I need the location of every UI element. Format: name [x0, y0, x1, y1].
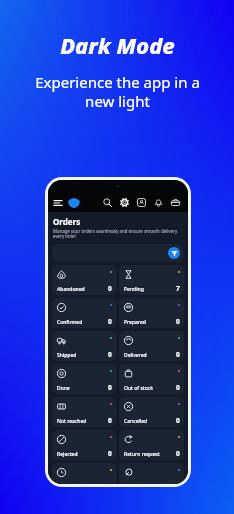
button[interactable]: Delivered: [119, 331, 184, 361]
staticText: 0: [176, 482, 180, 484]
staticText: 0: [108, 284, 112, 293]
staticText: 0: [176, 416, 180, 425]
staticText: Abandoned: [57, 286, 85, 293]
staticText: 0: [108, 449, 112, 458]
button[interactable]: Rejected: [52, 430, 116, 460]
button[interactable]: Not reached: [52, 397, 116, 427]
button[interactable]: Return request: [119, 430, 184, 460]
button[interactable]: [53, 244, 183, 262]
button[interactable]: Done: [52, 364, 116, 394]
staticText: Out of stock: [124, 385, 154, 392]
staticText: Not reached: [57, 418, 87, 425]
staticText: Pending: [124, 286, 144, 293]
staticText: 7: [176, 284, 180, 293]
button[interactable]: Partial: [52, 463, 116, 484]
staticText: Orders: [53, 216, 81, 227]
button[interactable]: Cancelled: [119, 397, 184, 427]
staticText: 0: [176, 449, 180, 458]
button[interactable]: Confirmed: [52, 298, 116, 328]
staticText: 0: [108, 383, 112, 392]
staticText: 0: [176, 383, 180, 392]
button[interactable]: Settings: [116, 194, 133, 211]
staticText: Rejected: [57, 451, 78, 458]
button[interactable]: Search: [99, 194, 116, 211]
button[interactable]: Filter: [168, 247, 180, 259]
staticText: 0: [176, 350, 180, 359]
button[interactable]: Prepared: [119, 298, 184, 328]
staticText: Return request: [124, 451, 160, 458]
staticText: 0: [108, 317, 112, 326]
staticText: Manage your orders seamlessly and ensure…: [53, 228, 178, 240]
staticText: Dark Mode: [60, 30, 175, 60]
button[interactable]: Refunded: [119, 463, 184, 484]
staticText: Cancelled: [124, 418, 148, 425]
staticText: 0: [108, 350, 112, 359]
button[interactable]: Notifications: [150, 194, 167, 211]
staticText: Done: [57, 385, 70, 392]
staticText: 0: [176, 317, 180, 326]
button[interactable]: Shipped: [52, 331, 116, 361]
button[interactable]: Menu: [52, 197, 64, 209]
button[interactable]: Store: [167, 194, 184, 211]
button[interactable]: Abandoned: [52, 265, 116, 295]
button[interactable]: Account: [133, 194, 150, 211]
staticText: Shipped: [57, 352, 77, 359]
button[interactable]: Pending: [119, 265, 184, 295]
staticText: Experience the app in a new light: [35, 72, 200, 111]
staticText: Delivered: [124, 352, 147, 359]
button[interactable]: Out of stock: [119, 364, 184, 394]
staticText: 0: [108, 416, 112, 425]
staticText: Prepared: [124, 319, 146, 326]
staticText: Confirmed: [57, 319, 83, 326]
